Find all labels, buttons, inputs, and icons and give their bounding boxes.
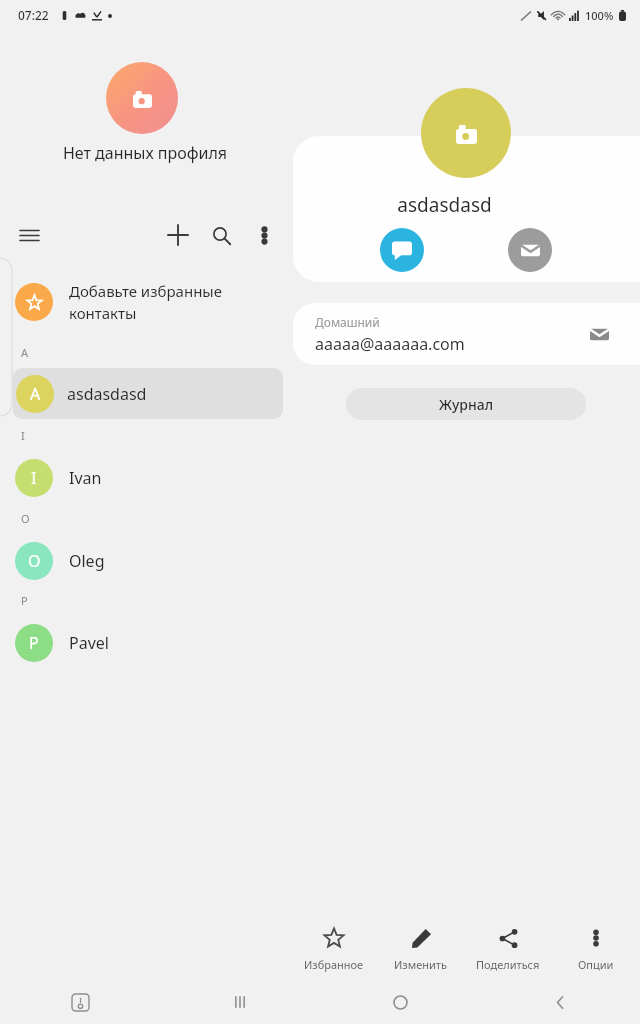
button[interactable]: Recent apps (160, 980, 320, 1024)
staticText: aaaaa@aaaaaa.com (315, 333, 465, 355)
staticText: 07:22 (18, 7, 49, 23)
staticText: I (21, 428, 25, 443)
button[interactable]: Profile photo (106, 62, 178, 134)
button[interactable]: A (13, 368, 283, 419)
button[interactable]: O (0, 535, 290, 586)
button[interactable]: Hide keyboard (0, 980, 160, 1024)
staticText: Ivan (69, 467, 102, 489)
button[interactable]: Изменить (377, 920, 464, 978)
button[interactable]: Журнал (346, 388, 586, 420)
button[interactable]: P (0, 617, 290, 668)
staticText: Нет данных профиля (0, 142, 290, 164)
button[interactable]: Search (203, 217, 239, 253)
button[interactable]: Избранное (290, 920, 377, 978)
button[interactable]: Home (320, 980, 480, 1024)
staticText: Журнал (439, 395, 493, 414)
staticText: Oleg (69, 550, 105, 572)
staticText: asdasdasd (67, 383, 147, 405)
staticText: Домашний (315, 314, 380, 330)
button[interactable]: Опции (552, 920, 640, 978)
staticText: P (21, 593, 28, 608)
staticText: I (31, 467, 37, 489)
staticText: A (30, 383, 41, 405)
button[interactable]: Add contact (160, 217, 196, 253)
staticText: Pavel (69, 632, 109, 654)
staticText: 100% (585, 8, 614, 23)
staticText: asdasdasd (293, 192, 596, 218)
staticText: Изменить (394, 957, 447, 972)
button[interactable]: Contact photo (421, 88, 511, 178)
staticText: O (21, 511, 30, 526)
button[interactable]: I (0, 452, 290, 503)
staticText: Опции (578, 957, 614, 972)
staticText: Добавьте избранные контакты (69, 281, 222, 324)
button[interactable]: Домашний (293, 303, 640, 365)
staticText: Избранное (304, 957, 364, 972)
button[interactable]: Поделиться (464, 920, 552, 978)
button[interactable]: Back (480, 980, 640, 1024)
staticText: P (29, 632, 39, 654)
button[interactable]: Send email (584, 319, 614, 349)
button[interactable]: Menu (11, 217, 47, 253)
staticText: Поделиться (476, 957, 540, 972)
staticText: A (21, 345, 29, 360)
button[interactable]: Email (508, 228, 552, 272)
button[interactable]: Message (380, 228, 424, 272)
staticText: O (28, 550, 41, 572)
button[interactable]: Добавьте избранные контакты (0, 272, 290, 332)
button[interactable]: More options (246, 217, 282, 253)
